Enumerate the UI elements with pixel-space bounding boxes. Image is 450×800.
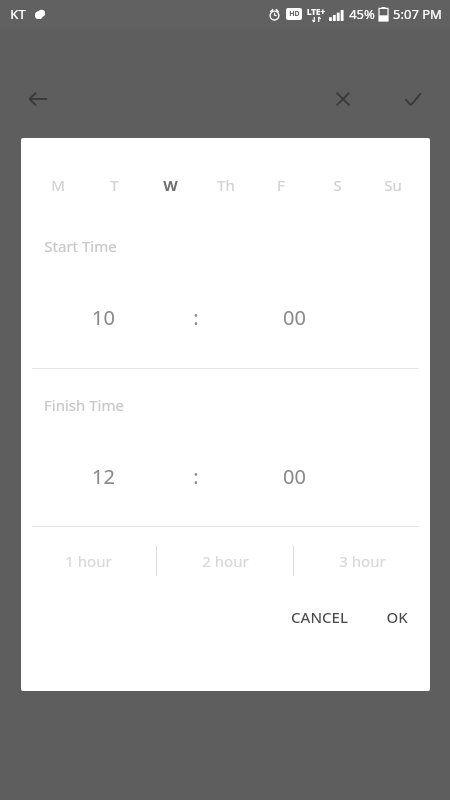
button[interactable]: Back [14, 75, 62, 123]
staticText: 45% [349, 5, 375, 23]
button[interactable]: 00 [215, 302, 373, 332]
staticText: M [51, 175, 65, 195]
staticText: 2 hour [202, 551, 249, 571]
button[interactable]: OK [374, 597, 420, 637]
staticText: 5:07 PM [393, 5, 442, 23]
button[interactable]: Save [389, 75, 437, 123]
staticText: Finish Time [44, 395, 124, 415]
button[interactable]: 10 [29, 302, 177, 332]
button[interactable]: T [97, 168, 131, 202]
staticText: 3 hour [339, 551, 386, 571]
staticText: 00 [283, 463, 306, 490]
button[interactable]: 2 hour [157, 537, 293, 585]
button[interactable]: 1 hour [21, 537, 156, 585]
staticText: Start Time [44, 236, 117, 256]
staticText: : [193, 463, 199, 490]
button[interactable]: W [153, 168, 187, 202]
staticText: CANCEL [291, 607, 348, 627]
button[interactable]: S [320, 168, 354, 202]
staticText: 1 hour [65, 551, 112, 571]
staticText: W [163, 175, 178, 195]
staticText: Su [384, 175, 402, 195]
staticText: OK [386, 607, 408, 627]
button[interactable]: F [264, 168, 298, 202]
button[interactable]: M [41, 168, 75, 202]
button[interactable]: Su [376, 168, 410, 202]
button[interactable]: Discard [319, 75, 367, 123]
staticText: 10 [92, 304, 115, 331]
button[interactable]: 3 hour [294, 537, 430, 585]
staticText: : [193, 304, 199, 331]
button[interactable]: Th [209, 168, 243, 202]
staticText: 00 [283, 304, 306, 331]
staticText: 12 [92, 463, 115, 490]
button[interactable]: CANCEL [279, 597, 360, 637]
staticText: HD [289, 9, 300, 19]
staticText: T [110, 175, 119, 195]
staticText: Th [217, 175, 235, 195]
button[interactable]: 00 [215, 461, 373, 491]
button[interactable]: 12 [29, 461, 177, 491]
staticText: LTE+ [307, 6, 325, 17]
staticText: KT [10, 5, 26, 23]
staticText: F [277, 175, 285, 195]
staticText: S [333, 175, 342, 195]
